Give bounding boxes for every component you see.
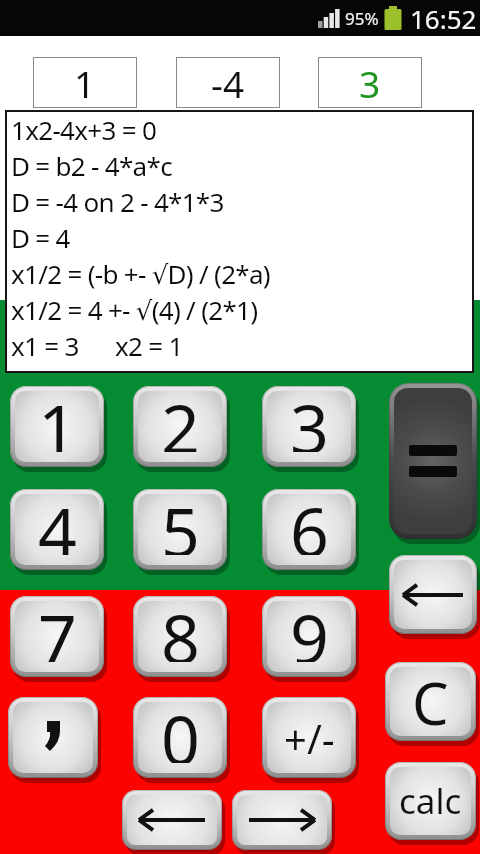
button[interactable]: 9: [262, 596, 356, 677]
staticText: 5: [161, 494, 200, 555]
button[interactable]: 5: [133, 489, 227, 570]
button[interactable]: calc: [385, 762, 476, 840]
button[interactable]: [232, 790, 332, 850]
staticText: 95%: [345, 7, 379, 30]
button[interactable]: [389, 555, 477, 634]
button[interactable]: [8, 697, 98, 778]
staticText: 6: [290, 494, 329, 555]
staticText: -4: [211, 58, 245, 108]
staticText: 2: [161, 391, 200, 452]
button[interactable]: 4: [10, 489, 104, 570]
staticText: x1 = 3 x2 = 1: [11, 328, 183, 363]
staticText: +/-: [284, 711, 335, 765]
button[interactable]: -4: [176, 57, 280, 108]
button[interactable]: 1: [10, 386, 104, 467]
staticText: C: [412, 667, 449, 732]
staticText: calc: [399, 777, 462, 825]
staticText: 1x2-4x+3 = 0: [11, 112, 157, 147]
button[interactable]: 3: [318, 57, 422, 108]
staticText: D = 4: [11, 220, 70, 255]
staticText: 4: [38, 494, 77, 555]
staticText: x1/2 = 4 +- √(4) / (2*1): [11, 292, 258, 327]
button[interactable]: 0: [133, 697, 227, 778]
staticText: 8: [161, 601, 200, 662]
button[interactable]: [389, 383, 477, 539]
button[interactable]: 8: [133, 596, 227, 677]
button[interactable]: 3: [262, 386, 356, 467]
staticText: 3: [359, 58, 381, 108]
staticText: 9: [290, 601, 329, 662]
staticText: 1: [74, 58, 96, 108]
staticText: 16:52: [410, 1, 477, 36]
button[interactable]: C: [385, 662, 476, 741]
button[interactable]: 1: [33, 57, 137, 108]
button[interactable]: 2: [133, 386, 227, 467]
button[interactable]: +/-: [262, 697, 356, 778]
staticText: D = -4 on 2 - 4*1*3: [11, 184, 224, 219]
staticText: D = b2 - 4*a*c: [11, 148, 172, 183]
staticText: 7: [38, 601, 77, 662]
staticText: 1: [38, 391, 77, 452]
staticText: 0: [161, 702, 200, 763]
button[interactable]: 7: [10, 596, 104, 677]
staticText: 3: [290, 391, 329, 452]
button[interactable]: 6: [262, 489, 356, 570]
staticText: x1/2 = (-b +- √D) / (2*a): [11, 256, 270, 291]
button[interactable]: [122, 790, 222, 850]
